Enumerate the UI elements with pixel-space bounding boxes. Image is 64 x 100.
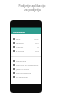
staticText: E-posta [16, 50, 25, 53]
button[interactable]: Naslov [11, 45, 41, 49]
staticText: Lj [37, 46, 39, 49]
staticText: za podjetja [24, 8, 41, 12]
staticText: ana [35, 50, 39, 53]
staticText: Podjetje aplikacijo [18, 4, 46, 8]
button[interactable]: Sinhronizacija [11, 71, 41, 75]
button[interactable]: Obvestila [11, 59, 41, 63]
staticText: Obvestila [16, 60, 27, 63]
button[interactable]: Ime [11, 37, 41, 41]
staticText: Nastavitve [13, 30, 25, 33]
button[interactable]: Varnost in zasebnost [11, 63, 41, 67]
button[interactable]: Telefon [11, 41, 41, 45]
staticText: Sinhronizacija [16, 72, 31, 75]
staticText: Naslov [16, 46, 24, 49]
staticText: Ime [16, 38, 21, 41]
staticText: Telefon [16, 42, 24, 45]
button[interactable]: O aplikaciji [11, 75, 41, 79]
staticText: Ana [34, 38, 39, 41]
button[interactable]: Jezik in vnos [11, 67, 41, 71]
staticText: Jezik in vnos [16, 68, 30, 71]
button[interactable]: E-posta [11, 49, 41, 53]
staticText: O aplikaciji [16, 76, 28, 79]
staticText: Varnost in zasebnost [16, 64, 39, 67]
staticText: 031 [35, 42, 39, 45]
